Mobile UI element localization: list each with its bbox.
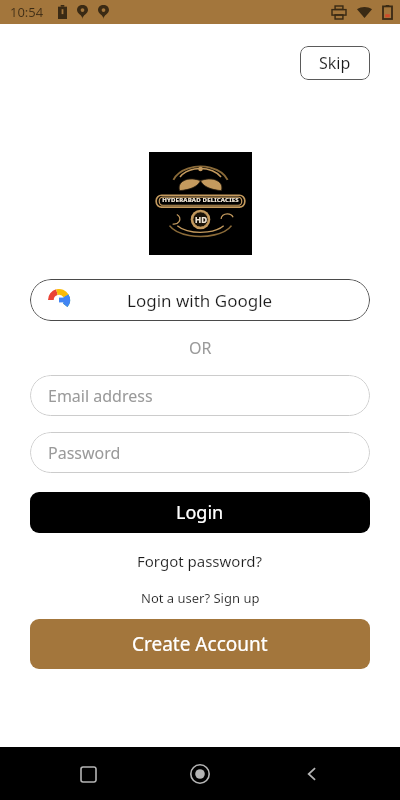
staticText: Not a user? Sign up xyxy=(141,589,260,607)
staticText: Forgot password? xyxy=(137,551,263,571)
button[interactable]: Not a user? Sign up xyxy=(133,587,268,609)
staticText: Password xyxy=(48,442,121,464)
staticText: 10:54 xyxy=(10,3,44,21)
button[interactable]: Login xyxy=(30,492,370,533)
button[interactable]: Skip xyxy=(300,46,370,80)
button[interactable]: Create Account xyxy=(30,619,370,669)
staticText: HYDERABAD DELICACIES xyxy=(162,196,239,204)
staticText: Login with Google xyxy=(127,289,273,312)
button[interactable]: Password xyxy=(30,432,370,473)
staticText: Email address xyxy=(48,385,153,407)
staticText: OR xyxy=(189,337,212,359)
staticText: Create Account xyxy=(132,631,268,657)
button[interactable]: Recents xyxy=(64,750,112,798)
button[interactable]: Email address xyxy=(30,375,370,416)
button[interactable]: Login with Google xyxy=(30,279,370,321)
button[interactable]: Back xyxy=(288,750,336,798)
button[interactable]: Forgot password? xyxy=(129,549,271,573)
staticText: HD xyxy=(195,214,207,225)
button[interactable]: Home xyxy=(176,750,224,798)
staticText: Skip xyxy=(319,52,351,74)
staticText: Login xyxy=(176,500,224,525)
